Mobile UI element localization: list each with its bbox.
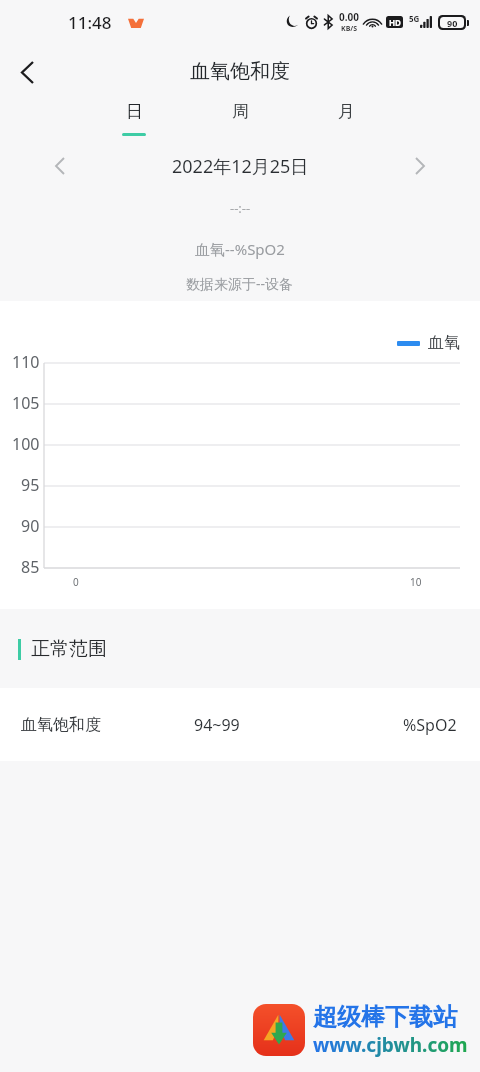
staticText: 日	[126, 101, 143, 122]
staticText: 超级棒下载站	[313, 1002, 457, 1032]
staticText: 周	[232, 101, 249, 122]
button[interactable]: 日	[81, 99, 187, 145]
staticText: 2022年12月25日	[172, 154, 309, 179]
button[interactable]: Back	[0, 45, 54, 99]
button[interactable]: 周	[187, 99, 293, 145]
staticText: 0	[73, 575, 79, 589]
button[interactable]: Next day	[400, 146, 440, 186]
staticText: HD	[389, 17, 401, 28]
staticText: 血氧饱和度	[21, 715, 101, 735]
staticText: 105	[12, 392, 40, 414]
button[interactable]: 月	[293, 99, 399, 145]
staticText: 正常范围	[31, 637, 107, 661]
staticText: KB/S	[341, 24, 358, 34]
staticText: 血氧饱和度	[190, 59, 290, 84]
staticText: 110	[12, 351, 40, 373]
staticText: 10	[410, 575, 422, 589]
staticText: 94~99	[194, 714, 240, 736]
staticText: 血氧	[428, 333, 460, 353]
staticText: %SpO2	[403, 714, 457, 736]
button[interactable]: Previous day	[40, 146, 80, 186]
staticText: 85	[21, 556, 40, 578]
staticText: 90	[447, 17, 458, 28]
staticText: --:--	[230, 199, 251, 217]
staticText: 血氧--%SpO2	[195, 239, 285, 259]
staticText: 数据来源于--设备	[186, 274, 294, 293]
staticText: 11:48	[68, 11, 112, 34]
staticText: 0.00	[339, 10, 359, 24]
staticText: 月	[338, 101, 355, 122]
staticText: 5G	[409, 13, 420, 24]
staticText: www.cjbwh.com	[313, 1032, 468, 1058]
staticText: 100	[12, 433, 40, 455]
staticText: 90	[21, 515, 40, 537]
staticText: 95	[21, 474, 40, 496]
button[interactable]: 血氧饱和度	[0, 688, 480, 761]
